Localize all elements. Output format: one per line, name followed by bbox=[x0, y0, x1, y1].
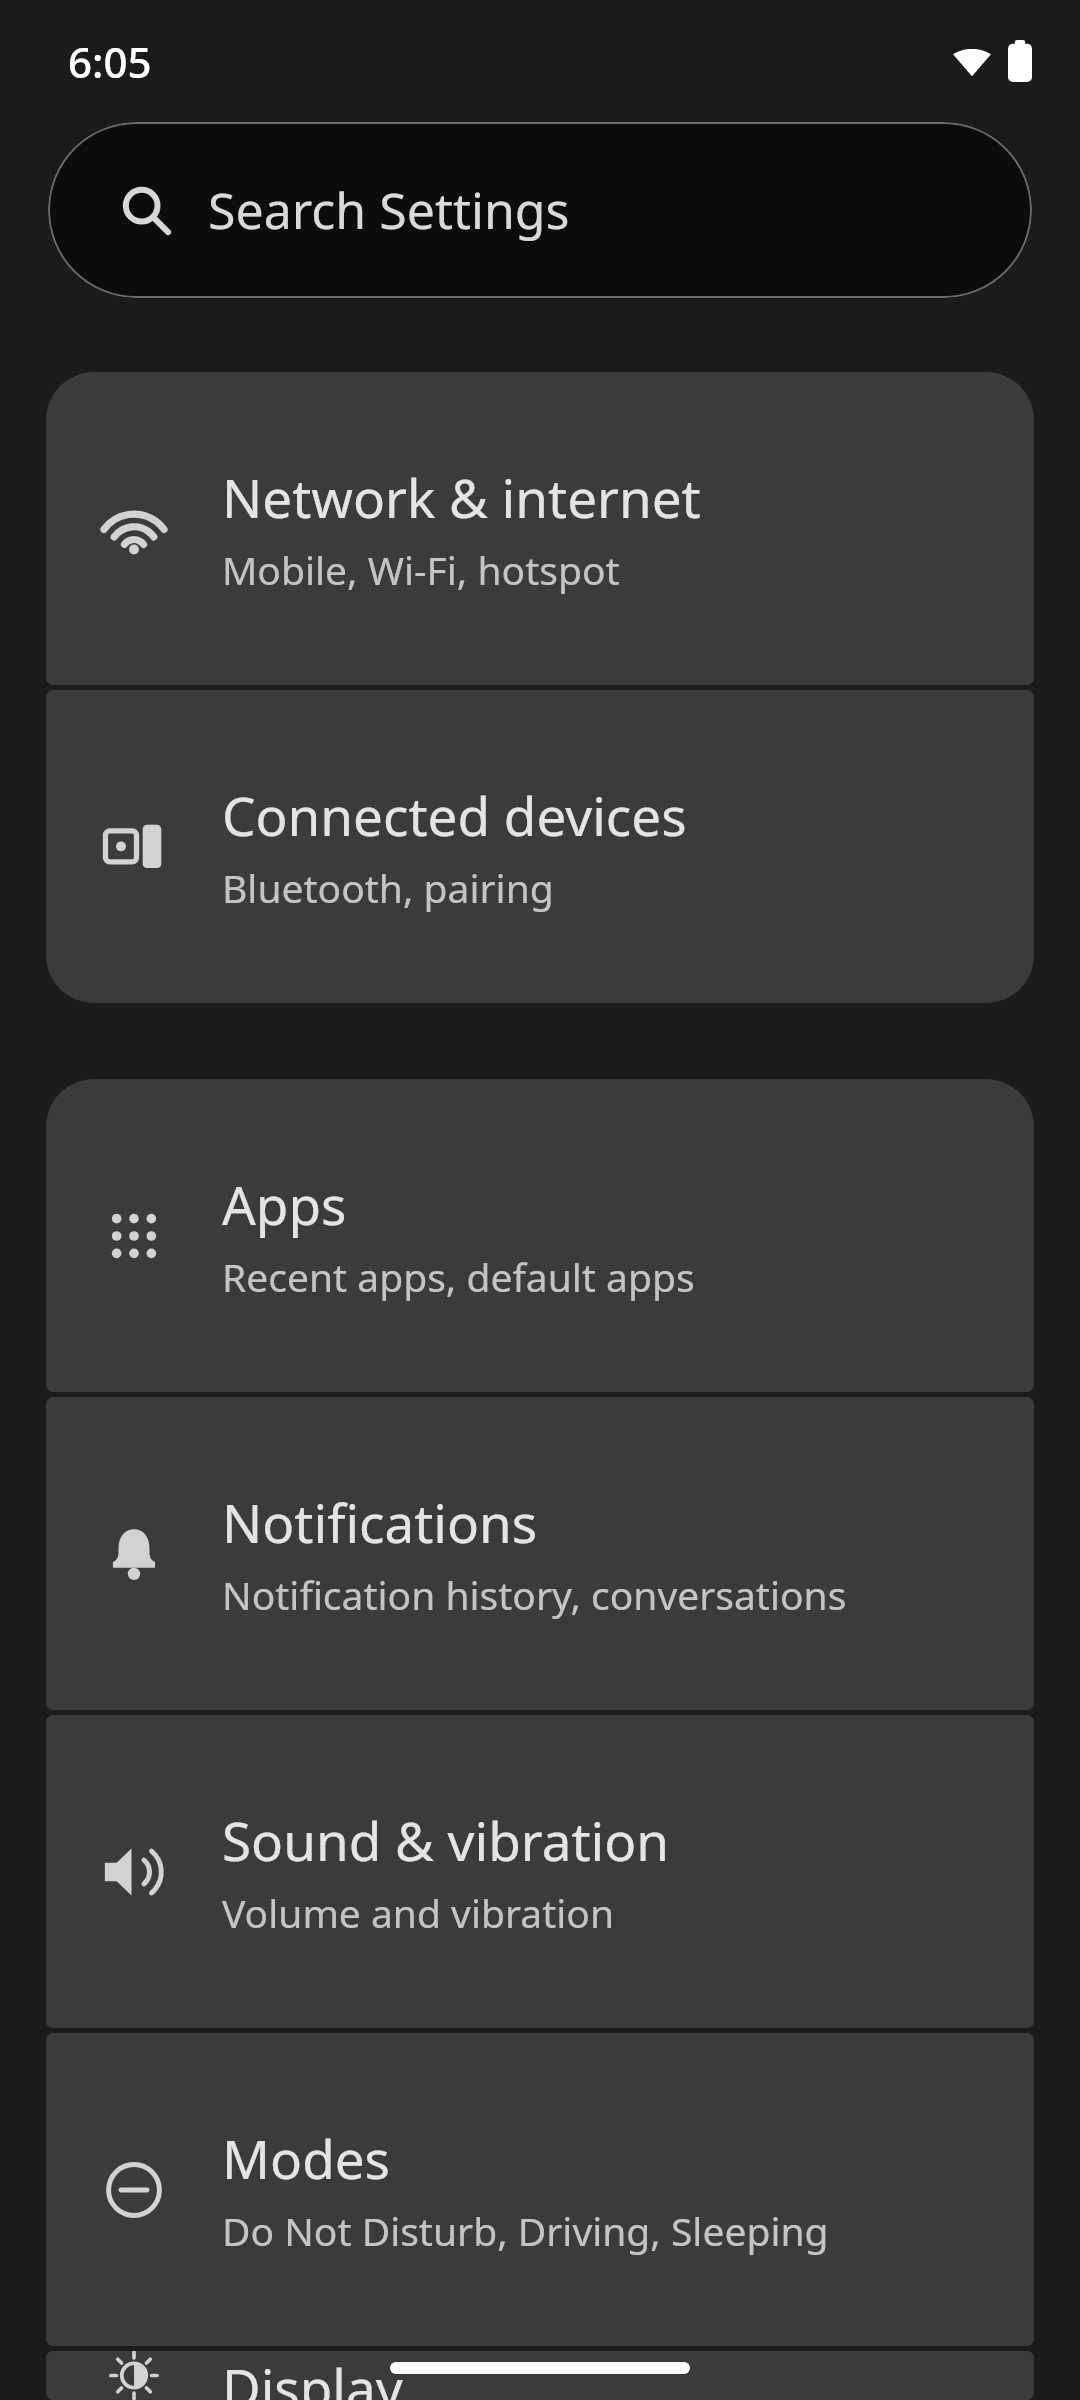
staticText: Notifications bbox=[222, 1486, 538, 1558]
staticText: Volume and vibration bbox=[222, 1886, 614, 1939]
staticText: Recent apps, default apps bbox=[222, 1250, 695, 1303]
button[interactable]: Modes bbox=[46, 2033, 1034, 2346]
staticText: Mobile, Wi-Fi, hotspot bbox=[222, 543, 620, 596]
other: Search bbox=[122, 186, 170, 234]
button[interactable]: Notifications bbox=[46, 1397, 1034, 1710]
button[interactable]: Apps bbox=[46, 1079, 1034, 1392]
staticText: Modes bbox=[222, 2122, 391, 2194]
staticText: Connected devices bbox=[222, 779, 687, 851]
staticText: 6:05 bbox=[68, 33, 152, 90]
staticText: Network & internet bbox=[222, 461, 701, 533]
button[interactable]: Sound & vibration bbox=[46, 1715, 1034, 2028]
button[interactable]: Connected devices bbox=[46, 690, 1034, 1003]
staticText: Display bbox=[222, 2351, 403, 2400]
staticText: Apps bbox=[222, 1168, 347, 1240]
staticText: Notification history, conversations bbox=[222, 1568, 847, 1621]
button[interactable]: Network & internet bbox=[46, 372, 1034, 685]
staticText: Do Not Disturb, Driving, Sleeping bbox=[222, 2204, 829, 2257]
button[interactable]: Search bbox=[48, 122, 1032, 298]
staticText: Sound & vibration bbox=[222, 1804, 670, 1876]
staticText: Bluetooth, pairing bbox=[222, 861, 554, 914]
staticText: Search Settings bbox=[208, 176, 570, 244]
button[interactable]: Display bbox=[46, 2351, 1034, 2400]
